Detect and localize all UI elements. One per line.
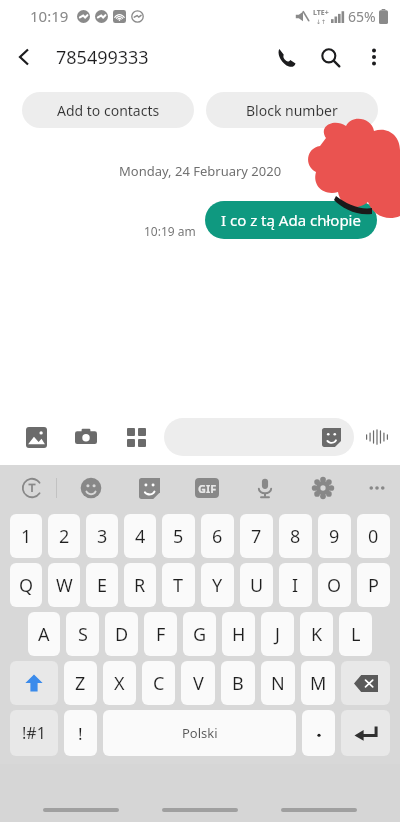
staticText: 6 — [212, 524, 223, 549]
button[interactable]: B — [221, 661, 255, 705]
button[interactable]: Stickers — [164, 418, 354, 456]
button[interactable]: 9 — [318, 514, 351, 558]
button[interactable]: I co z tą Ada chłopie — [205, 201, 377, 239]
button[interactable]: Emoji — [73, 470, 109, 506]
button[interactable]: More options — [352, 35, 396, 79]
button[interactable]: Y — [201, 563, 234, 607]
staticText: I — [292, 573, 299, 598]
staticText: D — [115, 622, 129, 647]
button[interactable]: Voice input — [247, 470, 283, 506]
staticText: Z — [75, 671, 86, 696]
button[interactable]: 0 — [357, 514, 390, 558]
staticText: B — [232, 671, 244, 696]
button[interactable]: C — [142, 661, 175, 705]
button[interactable]: P — [357, 563, 390, 607]
button[interactable]: K — [300, 612, 333, 656]
button[interactable]: Polski — [103, 710, 296, 756]
button[interactable]: I — [279, 563, 312, 607]
button[interactable]: More — [359, 470, 395, 506]
staticText: Polski — [182, 724, 218, 742]
button[interactable]: L — [339, 612, 372, 656]
button[interactable]: 3 — [86, 514, 118, 558]
button[interactable]: Stickers — [131, 470, 167, 506]
button[interactable]: Navigation — [281, 808, 357, 812]
staticText: 10:19 am — [144, 223, 196, 239]
button[interactable]: D — [105, 612, 138, 656]
button[interactable]: 6 — [201, 514, 234, 558]
button[interactable]: GIF — [189, 470, 225, 506]
button[interactable]: Navigation — [162, 808, 238, 812]
button[interactable]: Search — [308, 35, 352, 79]
button[interactable]: Enter — [341, 710, 390, 756]
staticText: J — [275, 622, 280, 647]
button[interactable]: G — [183, 612, 216, 656]
button[interactable]: Text recognition — [14, 470, 50, 506]
button[interactable]: Call — [264, 35, 308, 79]
button[interactable]: 1 — [10, 514, 42, 558]
button[interactable]: 7 — [240, 514, 273, 558]
button[interactable]: Q — [10, 563, 42, 607]
staticText: 7 — [251, 524, 262, 549]
staticText: LTE+ — [313, 8, 329, 18]
button[interactable]: Navigation — [43, 808, 119, 812]
button[interactable]: Voice message — [354, 414, 400, 460]
button[interactable]: V — [181, 661, 215, 705]
staticText: F — [156, 622, 166, 647]
staticText: Y — [212, 573, 223, 598]
staticText: U — [250, 573, 264, 598]
button[interactable]: U — [240, 563, 273, 607]
button[interactable]: 4 — [124, 514, 156, 558]
staticText: R — [134, 573, 146, 598]
button[interactable] — [302, 710, 335, 756]
button[interactable]: H — [222, 612, 255, 656]
button[interactable]: N — [261, 661, 295, 705]
button[interactable]: Block number — [206, 92, 378, 128]
button[interactable]: 8 — [279, 514, 312, 558]
button[interactable]: O — [318, 563, 351, 607]
button[interactable]: Gallery — [16, 417, 56, 457]
staticText: W — [56, 573, 73, 598]
button[interactable]: A — [28, 612, 60, 656]
staticText: S — [78, 622, 88, 647]
button[interactable]: J — [261, 612, 294, 656]
staticText: E — [97, 573, 108, 598]
button[interactable]: Back — [0, 33, 48, 81]
button[interactable]: 5 — [162, 514, 195, 558]
staticText: I co z tą Ada chłopie — [221, 210, 361, 230]
button[interactable]: E — [86, 563, 118, 607]
staticText: 3 — [97, 524, 108, 549]
staticText: 1 — [21, 524, 32, 549]
staticText: C — [153, 671, 165, 696]
button[interactable]: Settings — [305, 470, 341, 506]
staticText: Q — [19, 573, 34, 598]
staticText: Monday, 24 February 2020 — [119, 162, 282, 180]
staticText: 9 — [329, 524, 340, 549]
staticText: V — [193, 671, 204, 696]
button[interactable]: More apps — [116, 417, 156, 457]
button[interactable]: Z — [64, 661, 97, 705]
button[interactable]: W — [48, 563, 80, 607]
button[interactable]: Backspace — [341, 661, 390, 705]
button[interactable]: Camera — [66, 417, 106, 457]
staticText: N — [271, 671, 285, 696]
button[interactable]: !#1 — [10, 710, 58, 756]
staticText: !#1 — [22, 722, 46, 744]
button[interactable]: M — [301, 661, 335, 705]
staticText: P — [368, 573, 379, 598]
staticText: GIF — [198, 481, 217, 496]
staticText: O — [327, 573, 342, 598]
button[interactable]: Stickers — [318, 424, 344, 450]
button[interactable]: S — [66, 612, 99, 656]
staticText: 65% — [348, 7, 376, 26]
button[interactable]: Add to contacts — [22, 92, 194, 128]
staticText: H — [232, 622, 246, 647]
button[interactable]: ! — [64, 710, 97, 756]
button[interactable]: 2 — [48, 514, 80, 558]
staticText: 0 — [368, 524, 379, 549]
button[interactable]: X — [103, 661, 136, 705]
button[interactable]: R — [124, 563, 156, 607]
staticText: L — [351, 622, 361, 647]
button[interactable]: Shift — [10, 661, 58, 705]
button[interactable]: T — [162, 563, 195, 607]
button[interactable]: F — [144, 612, 177, 656]
